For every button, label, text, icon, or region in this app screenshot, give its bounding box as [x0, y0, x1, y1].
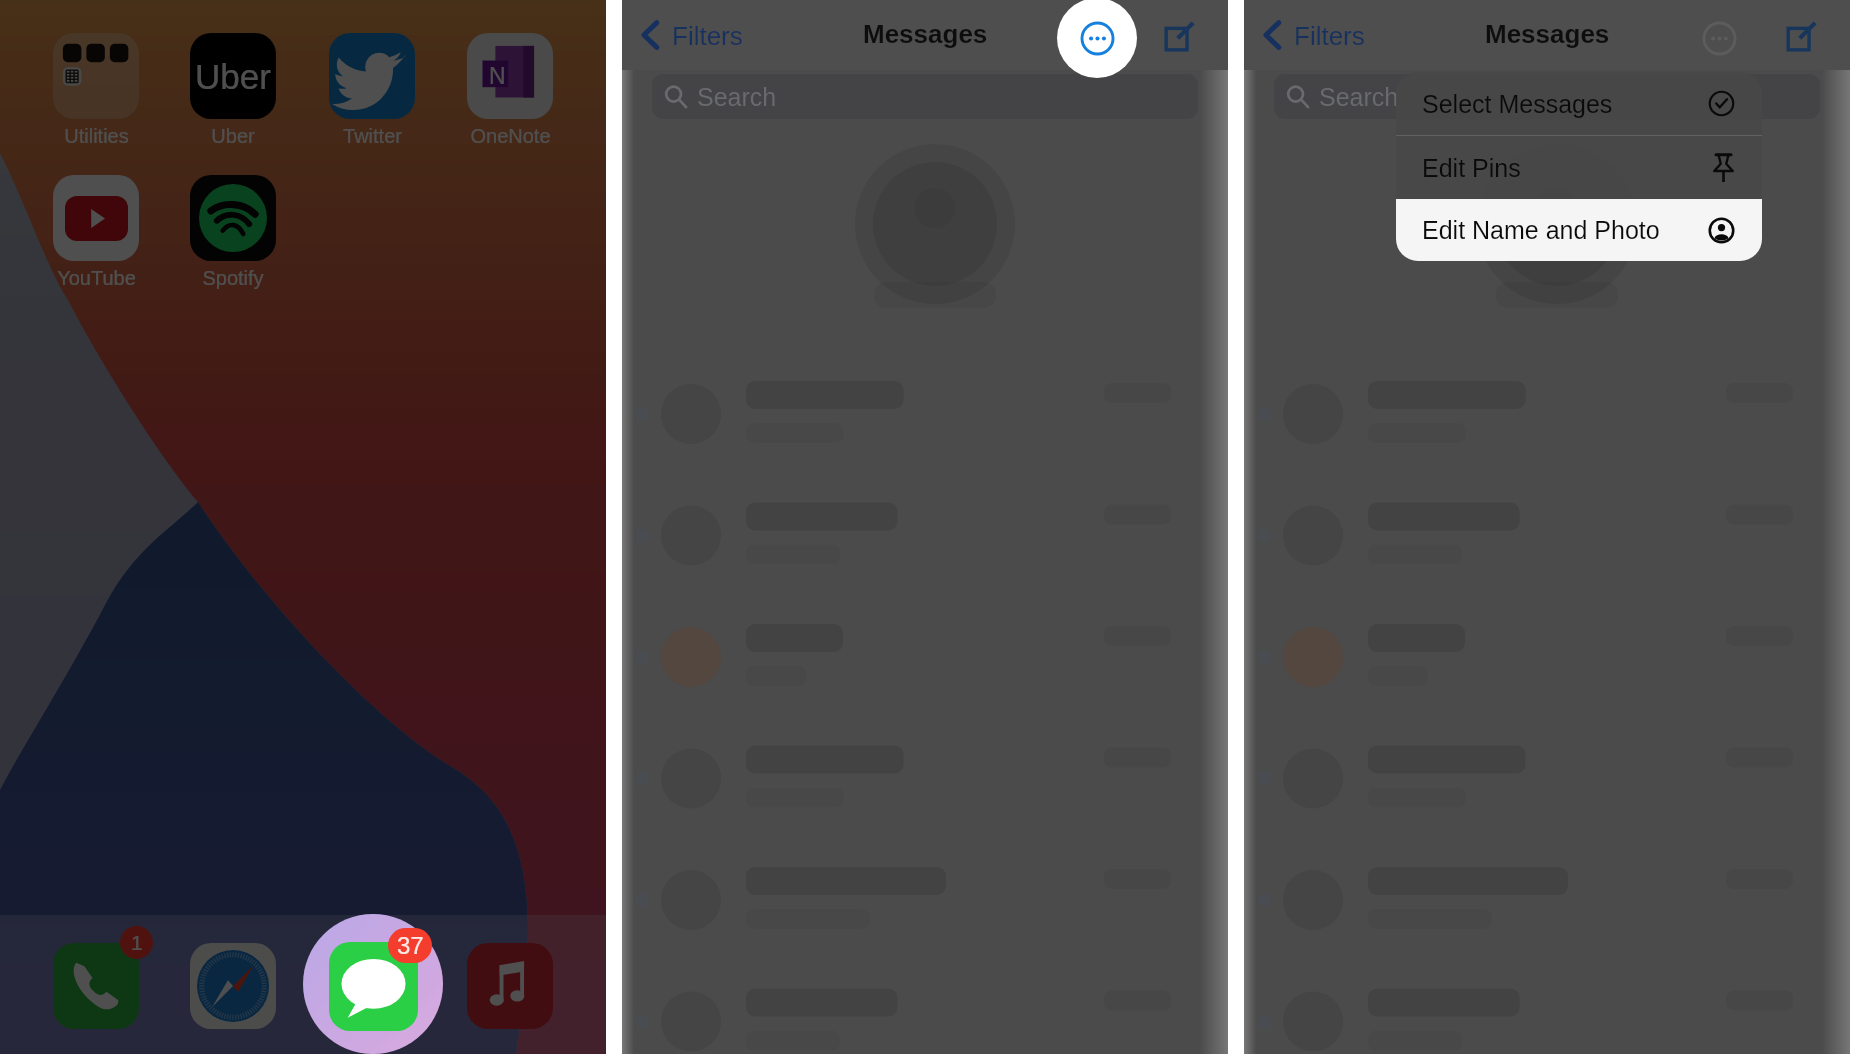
- staticText: 1: [131, 931, 143, 954]
- staticText: Messages: [1485, 19, 1610, 48]
- button[interactable]: [467, 943, 553, 1029]
- button[interactable]: Utilities: [28, 33, 164, 147]
- staticText: Spotify: [202, 267, 264, 289]
- staticText: OneNote: [470, 125, 551, 147]
- staticText: Twitter: [343, 125, 402, 147]
- button[interactable]: Edit Name and Photo: [1396, 199, 1762, 261]
- staticText: Select Messages: [1422, 90, 1613, 118]
- staticText: Filters: [1294, 21, 1365, 50]
- staticText: YouTube: [57, 267, 136, 289]
- staticText: Utilities: [64, 125, 129, 147]
- button[interactable]: Select Messages: [1396, 72, 1762, 135]
- button[interactable]: YouTube: [28, 175, 164, 289]
- button[interactable]: Twitter: [304, 33, 440, 147]
- button[interactable]: Spotify: [165, 175, 301, 289]
- button[interactable]: Compose new message: [1160, 17, 1198, 55]
- button[interactable]: Edit Pins: [1396, 136, 1762, 199]
- staticText: 37: [397, 932, 424, 959]
- staticText: Edit Pins: [1422, 154, 1521, 182]
- button[interactable]: Uber: [165, 33, 301, 147]
- button[interactable]: Search: [1274, 74, 1820, 119]
- button[interactable]: More options: [1700, 19, 1738, 57]
- staticText: N: [489, 63, 506, 89]
- button[interactable]: [190, 943, 276, 1029]
- staticText: Uber: [211, 125, 255, 147]
- staticText: Search: [1319, 83, 1399, 111]
- staticText: Messages: [863, 19, 988, 48]
- button[interactable]: Filters: [1263, 12, 1365, 58]
- staticText: Uber: [195, 57, 271, 96]
- staticText: Edit Name and Photo: [1422, 216, 1660, 244]
- button[interactable]: Search: [652, 74, 1198, 119]
- button[interactable]: [53, 943, 139, 1029]
- button[interactable]: Filters: [641, 12, 743, 58]
- staticText: Filters: [672, 21, 743, 50]
- button[interactable]: N: [442, 33, 578, 147]
- button[interactable]: More options: [1057, 0, 1137, 78]
- button[interactable]: [329, 942, 418, 1031]
- button[interactable]: Compose new message: [1782, 17, 1820, 55]
- staticText: Search: [697, 83, 777, 111]
